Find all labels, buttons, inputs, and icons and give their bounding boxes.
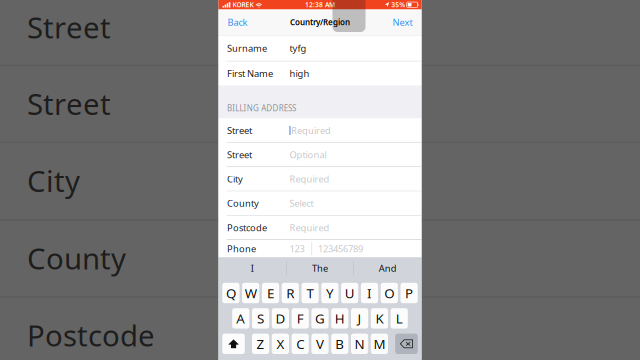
staticText: 12:38 AM	[305, 0, 335, 9]
staticText: Y	[326, 284, 334, 302]
staticText: tyfg	[289, 42, 306, 54]
staticText: F	[297, 309, 304, 327]
staticText: V	[316, 335, 324, 353]
button[interactable]: Back	[218, 10, 253, 35]
staticText: City	[27, 161, 80, 200]
staticText: Postcode	[227, 221, 267, 234]
button[interactable]: S	[252, 308, 269, 329]
staticText: County	[27, 238, 126, 277]
button[interactable]: Next	[386, 10, 421, 35]
button[interactable]: O	[381, 283, 398, 303]
staticText: 123456789	[318, 242, 363, 255]
button[interactable]: Z	[252, 334, 269, 354]
button[interactable]: D	[272, 308, 289, 329]
button[interactable]: Y	[321, 283, 338, 303]
staticText: Phone	[227, 242, 256, 255]
button[interactable]: X	[272, 334, 289, 354]
staticText: The	[312, 262, 328, 274]
staticText: I	[251, 262, 254, 274]
staticText: S	[257, 309, 264, 327]
staticText: Postcode	[27, 315, 155, 354]
button[interactable]: A	[232, 308, 249, 329]
button[interactable]: C	[292, 334, 309, 354]
staticText: Q	[226, 284, 236, 302]
staticText: County	[227, 197, 259, 209]
staticText: First Name	[227, 67, 273, 80]
button[interactable]: J	[351, 308, 368, 329]
button[interactable]: G	[311, 308, 329, 329]
staticText: Surname	[227, 42, 267, 54]
staticText: 123	[289, 242, 304, 255]
staticText: H	[335, 309, 345, 327]
staticText: City	[227, 173, 243, 185]
button[interactable]: L	[391, 308, 408, 329]
button[interactable]: Delete	[395, 334, 418, 354]
button[interactable]: K	[371, 308, 388, 329]
staticText: T	[307, 284, 314, 302]
staticText: W	[245, 284, 257, 302]
button[interactable]: W	[242, 283, 259, 303]
staticText: O	[384, 284, 394, 302]
staticText: Street	[227, 124, 252, 137]
button[interactable]: County	[218, 191, 421, 216]
staticText: Optional	[289, 148, 326, 161]
staticText: G	[315, 309, 325, 327]
staticText: KOREK	[232, 0, 253, 9]
button[interactable]: U	[341, 283, 358, 303]
staticText: N	[355, 335, 365, 353]
staticText: Required	[289, 221, 329, 234]
staticText: high	[289, 67, 309, 80]
staticText: R	[286, 284, 294, 302]
staticText: Required	[291, 124, 331, 137]
button[interactable]: First Name	[218, 61, 421, 85]
staticText: X	[276, 335, 284, 353]
staticText: M	[373, 335, 385, 353]
staticText: K	[375, 309, 383, 327]
button[interactable]: V	[311, 334, 329, 354]
button[interactable]: And	[354, 257, 422, 279]
staticText: Back	[227, 16, 247, 28]
staticText: I	[367, 284, 372, 302]
staticText: Street	[227, 148, 252, 161]
staticText: C	[296, 335, 304, 353]
staticText: And	[379, 262, 397, 274]
staticText: Street	[27, 7, 111, 46]
staticText: 35%	[391, 0, 405, 9]
button[interactable]: Street	[218, 118, 421, 143]
button[interactable]: R	[282, 283, 299, 303]
button[interactable]: I	[218, 257, 286, 279]
button[interactable]: M	[371, 334, 388, 354]
button[interactable]: Phone	[218, 240, 421, 257]
staticText: BILLING ADDRESS	[227, 103, 296, 113]
staticText: Select	[289, 197, 313, 209]
staticText: Next	[392, 16, 412, 28]
button[interactable]: E	[262, 283, 279, 303]
button[interactable]: I	[361, 283, 378, 303]
staticText: D	[275, 309, 285, 327]
staticText: Street	[27, 84, 111, 123]
staticText: E	[267, 284, 274, 302]
button[interactable]: Street	[218, 143, 421, 167]
button[interactable]: F	[292, 308, 309, 329]
button[interactable]: The	[286, 257, 353, 279]
staticText: L	[396, 309, 403, 327]
staticText: P	[405, 284, 413, 302]
staticText: Required	[289, 173, 329, 185]
button[interactable]: B	[331, 334, 348, 354]
staticText: J	[358, 309, 362, 327]
button[interactable]: Q	[222, 283, 239, 303]
staticText: Z	[257, 335, 265, 353]
button[interactable]: H	[331, 308, 348, 329]
staticText: Country/Region	[290, 17, 350, 27]
button[interactable]: Postcode	[218, 216, 421, 240]
staticText: B	[335, 335, 344, 353]
button[interactable]: City	[218, 167, 421, 191]
button[interactable]: Shift	[222, 334, 245, 354]
button[interactable]: Surname	[218, 35, 421, 61]
staticText: U	[345, 284, 355, 302]
button[interactable]: P	[400, 283, 418, 303]
button[interactable]: N	[351, 334, 368, 354]
button[interactable]: T	[301, 283, 319, 303]
staticText: A	[236, 309, 245, 327]
